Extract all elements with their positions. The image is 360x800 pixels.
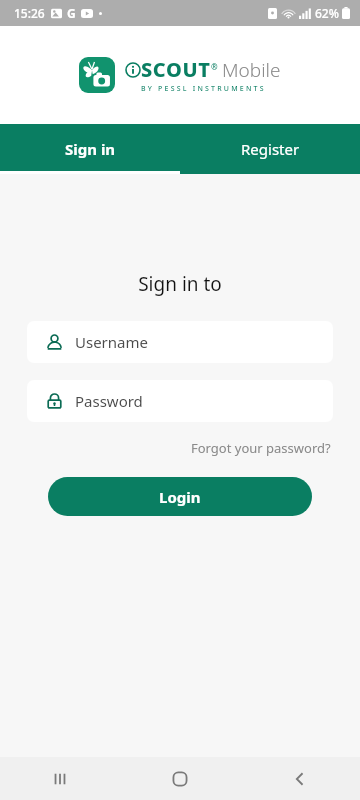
button[interactable]: Back [240,757,360,800]
button[interactable]: Forgot your password? [189,436,333,460]
button[interactable]: Home [120,757,240,800]
staticText: Forgot your password? [191,439,331,457]
button[interactable]: Register [180,124,360,174]
staticText: Register [241,139,300,159]
staticText: Sign in to [138,271,222,297]
staticText: Login [159,487,201,507]
staticText: Mobile [222,57,281,83]
button[interactable]: Login [48,477,312,516]
staticText: Sign in [65,139,116,159]
staticText: BY PESSL INSTRUMENTS [141,84,266,94]
button[interactable]: Sign in [0,124,180,174]
staticText: 62% [315,5,339,21]
staticText: SCOUT [141,56,211,83]
staticText: Password [75,391,143,411]
staticText: 15:26 [14,5,45,21]
staticText: Username [75,332,148,352]
button[interactable]: Recent apps [0,757,120,800]
staticText: G [67,5,76,21]
staticText: ® [211,61,218,72]
button[interactable]: Username [27,321,333,363]
button[interactable]: Password [27,380,333,422]
